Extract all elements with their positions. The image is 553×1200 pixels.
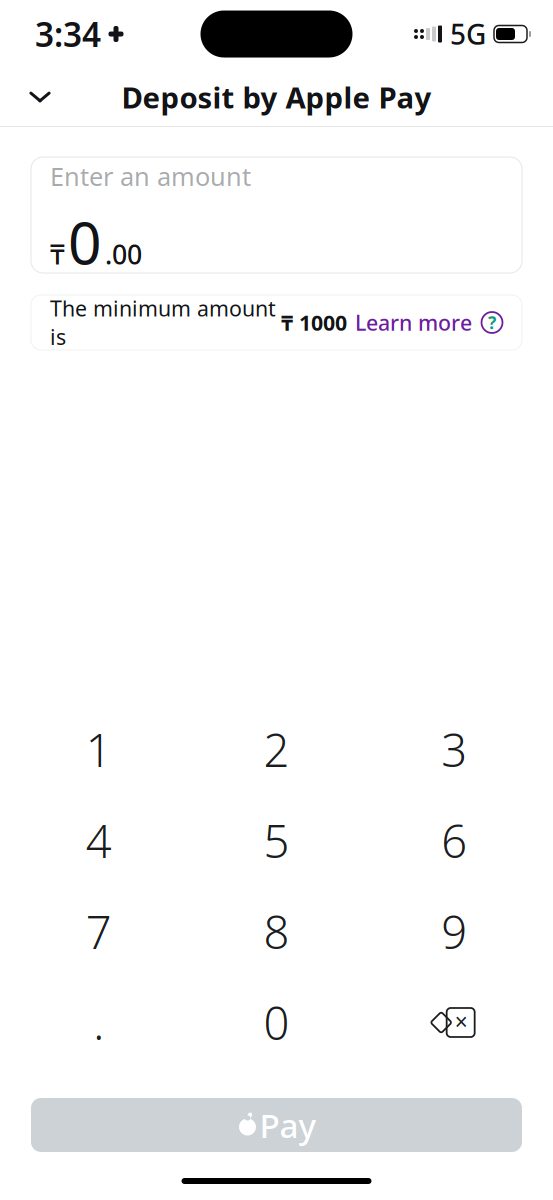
- staticText: 6: [441, 810, 467, 871]
- button[interactable]: 3: [365, 704, 543, 795]
- button[interactable]: Close: [12, 69, 68, 125]
- staticText: ₸: [50, 236, 65, 272]
- staticText: 3:34: [35, 12, 101, 56]
- staticText: 9: [441, 901, 467, 962]
- button[interactable]: 8: [188, 886, 365, 977]
- button[interactable]: Enter an amount: [31, 157, 522, 273]
- button[interactable]: 0: [188, 977, 365, 1068]
- button[interactable]: 5: [188, 795, 365, 886]
- staticText: 7: [86, 901, 112, 962]
- button[interactable]: 1: [10, 704, 188, 795]
- staticText: ?: [488, 311, 496, 334]
- button[interactable]: Learn more: [355, 308, 503, 337]
- staticText: 8: [263, 901, 289, 962]
- staticText: 0: [68, 203, 102, 281]
- staticText: Enter an amount: [50, 159, 251, 193]
- button[interactable]: 7: [10, 886, 188, 977]
- staticText: 3: [441, 719, 467, 780]
- button[interactable]: 6: [365, 795, 543, 886]
- staticText: ×: [455, 1006, 468, 1036]
- staticText: 5: [263, 810, 289, 871]
- staticText: 5G: [450, 15, 486, 53]
- staticText: .00: [105, 236, 142, 272]
- button[interactable]: .: [10, 977, 188, 1068]
- staticText: 0: [263, 992, 289, 1053]
- staticText: 1: [86, 719, 112, 780]
- staticText: .: [93, 992, 104, 1053]
- button[interactable]: 2: [188, 704, 365, 795]
- staticText: The minimum amount is: [50, 294, 276, 351]
- staticText: Deposit by Apple Pay: [121, 77, 431, 116]
- button[interactable]: 9: [365, 886, 543, 977]
- staticText: ₸ 1000: [281, 308, 347, 337]
- staticText: Pay: [259, 1103, 316, 1147]
- button[interactable]: 4: [10, 795, 188, 886]
- button[interactable]: Delete: [365, 977, 543, 1068]
- staticText: 4: [86, 810, 112, 871]
- staticText: 2: [263, 719, 289, 780]
- button[interactable]: Pay: [31, 1098, 522, 1152]
- staticText: Learn more: [355, 308, 472, 337]
